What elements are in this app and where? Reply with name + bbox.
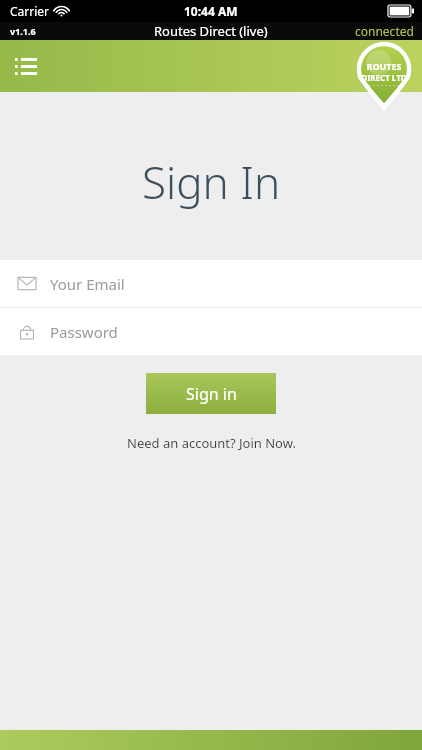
staticText: Password	[50, 322, 118, 342]
staticText: v1.1.6	[10, 25, 36, 37]
staticText: Need an account? Join Now.	[127, 434, 296, 452]
button[interactable]: Menu	[8, 48, 44, 84]
staticText: Sign In	[142, 152, 281, 212]
button[interactable]: Need an account? Join Now.	[119, 430, 304, 456]
staticText: 10:44 AM	[184, 3, 238, 19]
staticText: Sign in	[186, 383, 237, 405]
button[interactable]: Your Email	[0, 260, 422, 307]
button[interactable]: Sign in	[146, 373, 276, 414]
staticText: Carrier	[10, 3, 50, 19]
button[interactable]: Password	[0, 308, 422, 355]
staticText: DIRECT LTD	[361, 72, 407, 83]
staticText: Your Email	[50, 274, 125, 294]
staticText: connected	[355, 23, 414, 39]
staticText: Routes Direct (live)	[154, 22, 268, 40]
staticText: ROUTES	[366, 60, 402, 72]
